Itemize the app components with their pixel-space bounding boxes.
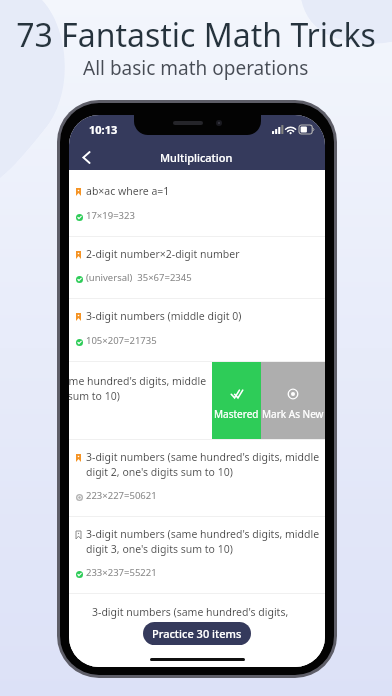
staticText: 223×227=50621 bbox=[86, 489, 157, 502]
button[interactable]: 3-digit numbers (same hundred's digits, … bbox=[69, 440, 325, 516]
staticText: Multiplication bbox=[160, 150, 233, 165]
staticText: 10:13 bbox=[89, 122, 118, 137]
button[interactable]: Mastered bbox=[212, 362, 261, 439]
staticText: 73 Fantastic Math Tricks bbox=[16, 13, 376, 57]
button[interactable]: Practice 30 items bbox=[143, 622, 251, 645]
button[interactable]: 2-digit number×2-digit number bbox=[69, 237, 325, 298]
staticText: 105×207=21735 bbox=[86, 334, 157, 347]
button[interactable]: 3-digit numbers (middle digit 0) bbox=[69, 299, 325, 361]
staticText: 3-digit numbers (same hundred's digits, … bbox=[69, 374, 212, 403]
staticText: 17×19=323 bbox=[86, 209, 135, 222]
staticText: ab×ac where a=1 bbox=[86, 184, 170, 198]
staticText: (universal) 35×67=2345 bbox=[86, 271, 192, 284]
button[interactable]: Back bbox=[69, 144, 103, 170]
staticText: 3-digit numbers (same hundred's digits, … bbox=[86, 527, 320, 556]
staticText: 3-digit numbers (middle digit 0) bbox=[86, 309, 242, 323]
button[interactable]: 3-digit numbers (same hundred's digits, … bbox=[69, 362, 325, 439]
staticText: Mark As New bbox=[262, 407, 324, 421]
staticText: 3-digit numbers (same hundred's digits, … bbox=[92, 605, 325, 619]
staticText: Mastered bbox=[214, 407, 259, 421]
staticText: Practice 30 items bbox=[152, 626, 242, 641]
button[interactable]: 3-digit numbers (same hundred's digits, … bbox=[69, 517, 325, 593]
staticText: 233×237=55221 bbox=[86, 566, 157, 579]
button[interactable]: Mark As New bbox=[261, 362, 325, 439]
staticText: 2-digit number×2-digit number bbox=[86, 247, 240, 261]
staticText: 3-digit numbers (same hundred's digits, … bbox=[86, 450, 320, 479]
button[interactable]: ab×ac where a=1 bbox=[69, 174, 325, 236]
staticText: All basic math operations bbox=[83, 55, 309, 81]
